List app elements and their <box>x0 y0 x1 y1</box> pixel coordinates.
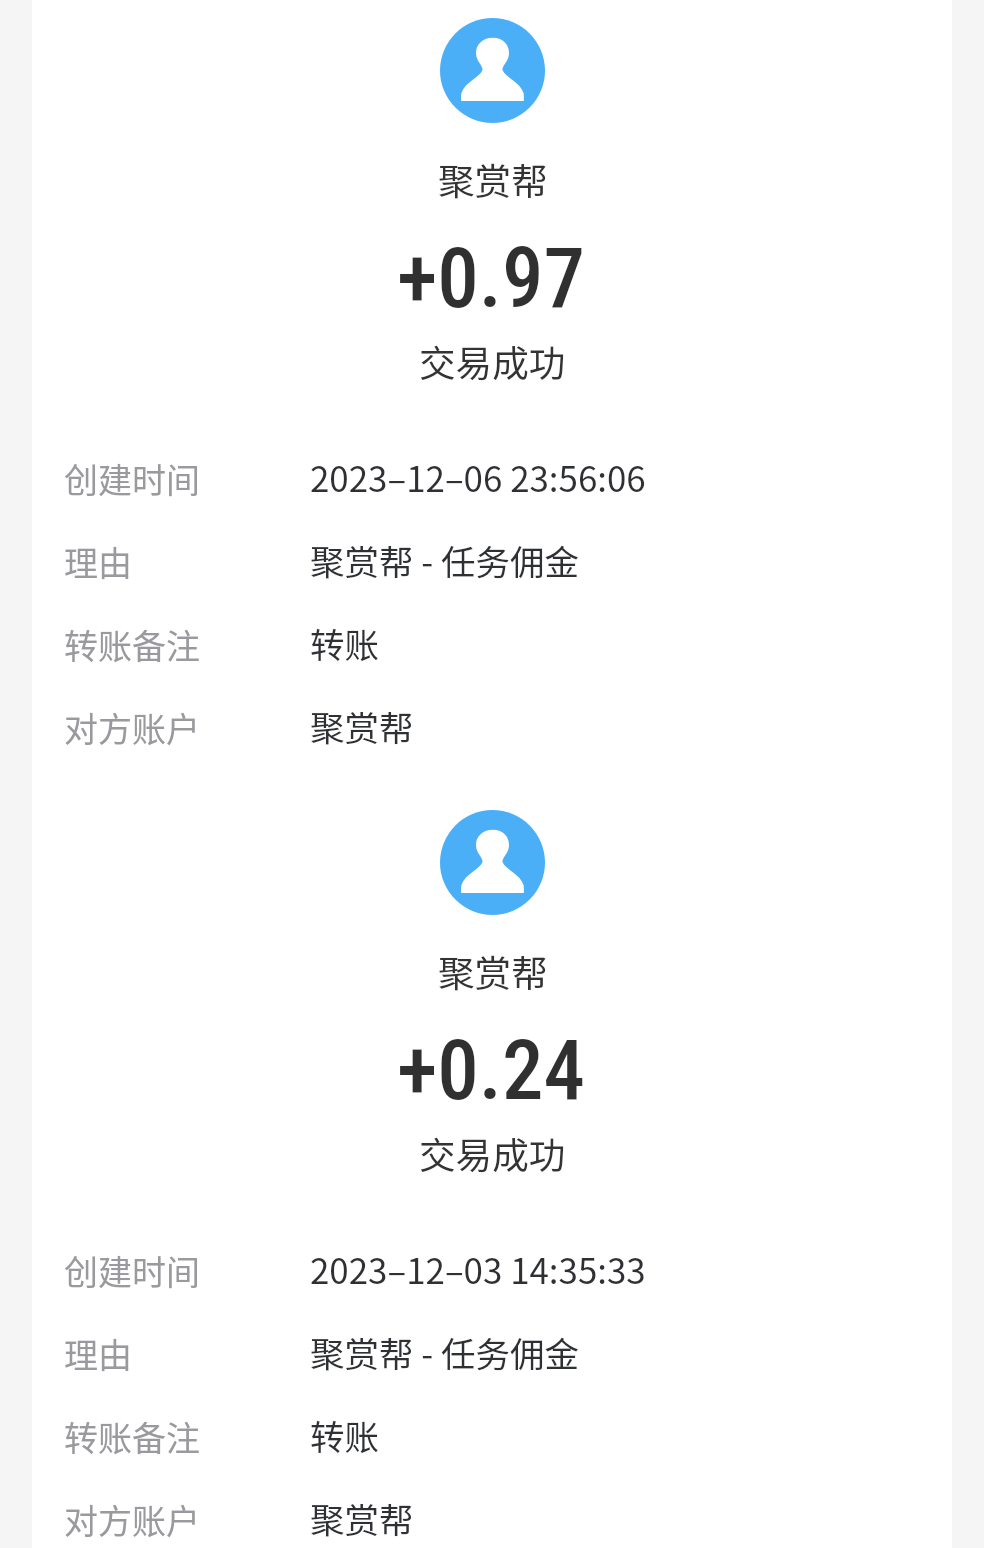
staticText: 理由 <box>64 1329 132 1378</box>
staticText: 2023–12–03 14:35:33 <box>310 1244 646 1295</box>
button[interactable]: Contact avatar, 聚赏帮 <box>440 810 545 915</box>
button[interactable]: 转账备注 <box>0 1387 984 1470</box>
staticText: 聚赏帮 - 任务佣金 <box>310 535 579 585</box>
staticText: 交易成功 <box>419 1127 566 1180</box>
staticText: 2023–12–06 23:56:06 <box>310 452 646 503</box>
staticText: +0.24 <box>397 1022 585 1119</box>
button[interactable]: 对方账户 <box>0 1470 984 1548</box>
staticText: 创建时间 <box>64 454 200 503</box>
staticText: 创建时间 <box>64 1246 200 1295</box>
button[interactable] <box>32 0 952 750</box>
button[interactable]: 转账备注 <box>0 595 984 678</box>
staticText: 转账 <box>310 1410 379 1460</box>
button[interactable]: 创建时间 <box>0 429 984 512</box>
staticText: 聚赏帮 <box>438 153 548 206</box>
button[interactable] <box>32 772 952 1542</box>
staticText: 转账备注 <box>64 1412 200 1461</box>
staticText: 聚赏帮 - 任务佣金 <box>310 1327 579 1377</box>
staticText: 交易成功 <box>419 335 566 388</box>
staticText: +0.97 <box>397 230 585 327</box>
staticText: 转账 <box>310 618 379 668</box>
button[interactable]: 对方账户 <box>0 678 984 761</box>
staticText: 对方账户 <box>64 703 200 752</box>
staticText: 聚赏帮 <box>310 701 414 751</box>
button[interactable]: Contact avatar, 聚赏帮 <box>440 18 545 123</box>
staticText: 聚赏帮 <box>438 945 548 998</box>
button[interactable]: 理由 <box>0 512 984 595</box>
button[interactable]: 理由 <box>0 1304 984 1387</box>
staticText: 转账备注 <box>64 620 200 669</box>
button[interactable]: 创建时间 <box>0 1221 984 1304</box>
staticText: 理由 <box>64 537 132 586</box>
staticText: 对方账户 <box>64 1495 200 1544</box>
staticText: 聚赏帮 <box>310 1493 414 1543</box>
